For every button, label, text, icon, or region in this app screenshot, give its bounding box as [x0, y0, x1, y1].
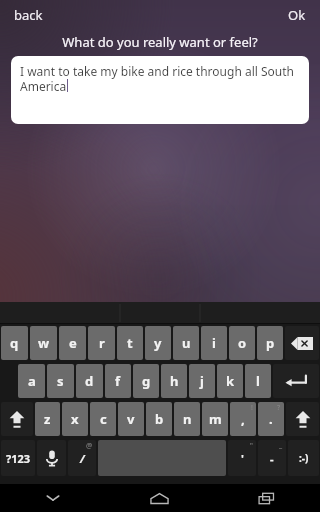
button[interactable]: d — [76, 364, 103, 398]
staticText: h — [170, 372, 179, 390]
button[interactable]: Voice input — [37, 440, 66, 476]
button[interactable]: / — [68, 440, 96, 476]
button[interactable]: c — [90, 402, 116, 436]
staticText: g — [142, 372, 151, 390]
staticText: n — [183, 410, 192, 428]
button[interactable]: w — [30, 326, 57, 360]
staticText: _ — [279, 441, 283, 451]
staticText: c — [100, 410, 107, 428]
staticText: v — [127, 410, 135, 428]
staticText: ? — [277, 403, 281, 413]
staticText: l — [256, 372, 260, 390]
button[interactable]: k — [217, 364, 243, 398]
button[interactable]: b — [146, 402, 172, 436]
button[interactable]: a — [18, 364, 45, 398]
button[interactable]: p — [257, 326, 283, 360]
staticText: z — [44, 410, 51, 428]
staticText: , — [241, 410, 245, 428]
staticText: d — [85, 372, 94, 390]
button[interactable]: r — [88, 326, 115, 360]
button[interactable]: ?123 — [1, 440, 35, 476]
button[interactable]: , — [230, 402, 256, 436]
staticText: o — [238, 334, 247, 352]
button[interactable]: e — [59, 326, 86, 360]
staticText: What do you really want or feel? — [62, 33, 258, 51]
button[interactable]: Shift — [286, 402, 319, 436]
staticText: :-) — [299, 451, 309, 465]
button[interactable]: ' — [228, 440, 256, 476]
button[interactable]: :-) — [288, 440, 319, 476]
button[interactable]: Shift — [1, 402, 33, 436]
button[interactable]: g — [133, 364, 159, 398]
staticText: ' — [241, 451, 244, 466]
button[interactable]: n — [174, 402, 200, 436]
staticText: i — [212, 334, 216, 352]
button[interactable]: - — [258, 440, 286, 476]
staticText: " — [250, 441, 253, 451]
staticText: a — [28, 372, 36, 390]
button[interactable]: f — [105, 364, 131, 398]
staticText: t — [127, 334, 133, 352]
button[interactable]: Ok — [278, 2, 320, 28]
staticText: u — [182, 334, 191, 352]
staticText: Ok — [288, 6, 306, 24]
staticText: I want to take my bike and rice through … — [20, 63, 300, 94]
button[interactable]: l — [245, 364, 271, 398]
staticText: q — [10, 334, 19, 352]
staticText: ! — [251, 403, 253, 413]
button[interactable]: Enter — [273, 364, 319, 398]
staticText: . — [269, 410, 273, 428]
staticText: - — [270, 451, 274, 466]
staticText: j — [200, 372, 204, 390]
staticText: b — [155, 410, 164, 428]
button[interactable]: back — [0, 2, 53, 28]
button[interactable]: Recent apps — [213, 484, 320, 512]
button[interactable]: Backspace — [285, 326, 319, 360]
button[interactable]: u — [173, 326, 199, 360]
staticText: back — [14, 6, 43, 24]
button[interactable]: x — [62, 402, 88, 436]
staticText: k — [226, 372, 235, 390]
button[interactable]: Home — [106, 484, 213, 512]
staticText: m — [209, 410, 222, 428]
staticText: p — [266, 334, 275, 352]
staticText: r — [99, 334, 105, 352]
button[interactable]: q — [1, 326, 28, 360]
staticText: w — [38, 334, 50, 352]
button[interactable]: m — [202, 402, 228, 436]
button[interactable]: h — [161, 364, 187, 398]
staticText: / — [80, 451, 85, 466]
button[interactable]: z — [35, 402, 60, 436]
staticText: f — [115, 372, 121, 390]
button[interactable]: o — [229, 326, 255, 360]
button[interactable]: y — [145, 326, 171, 360]
staticText: y — [154, 334, 162, 352]
button[interactable]: Hide keyboard — [0, 484, 106, 512]
button[interactable]: t — [117, 326, 143, 360]
staticText: x — [71, 410, 79, 428]
staticText: ?123 — [6, 451, 31, 466]
staticText: e — [69, 334, 77, 352]
button[interactable]: s — [47, 364, 74, 398]
button[interactable]: I want to take my bike and rice through … — [11, 56, 309, 124]
staticText: @ — [86, 441, 93, 451]
button[interactable]: v — [118, 402, 144, 436]
staticText: s — [57, 372, 64, 390]
button[interactable]: . — [258, 402, 284, 436]
button[interactable]: i — [201, 326, 227, 360]
button[interactable]: j — [189, 364, 215, 398]
